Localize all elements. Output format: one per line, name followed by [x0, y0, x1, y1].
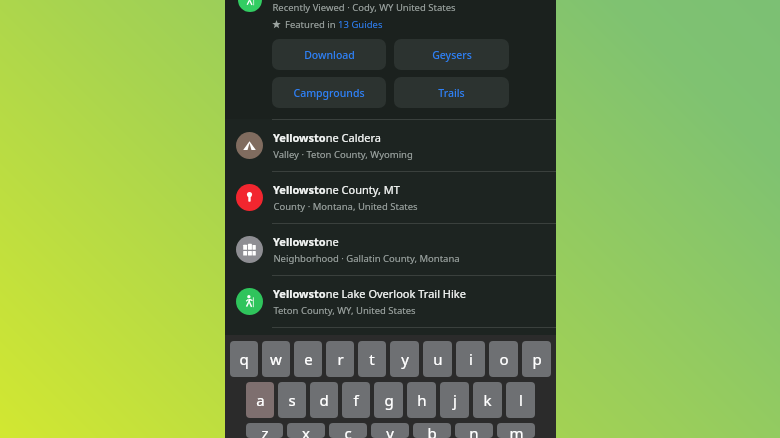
staticText: Valley · Teton County, Wyoming: [273, 148, 413, 161]
button[interactable]: k: [473, 382, 502, 418]
staticText: e: [304, 349, 313, 369]
button[interactable]: z: [246, 423, 283, 438]
button[interactable]: g: [374, 382, 403, 418]
staticText: Download: [304, 48, 355, 62]
staticText: d: [319, 390, 329, 410]
button[interactable]: Geysers: [394, 39, 509, 70]
staticText: s: [288, 390, 296, 410]
staticText: i: [469, 349, 473, 369]
staticText: l: [519, 390, 523, 410]
staticText: Yellowstone: [273, 234, 339, 249]
staticText: Campgrounds: [293, 86, 365, 100]
button[interactable]: r: [326, 341, 354, 377]
staticText: Yellowstone Caldera: [273, 130, 381, 145]
button[interactable]: u: [423, 341, 452, 377]
button[interactable]: h: [407, 382, 436, 418]
other: County: [236, 184, 263, 211]
staticText: v: [386, 423, 394, 438]
button[interactable]: x: [287, 423, 325, 438]
staticText: Teton County, WY, United States: [273, 304, 416, 317]
button[interactable]: Download: [272, 39, 386, 70]
button[interactable]: m: [497, 423, 535, 438]
button[interactable]: n: [455, 423, 493, 438]
staticText: Recently Viewed · Cody, WY United States: [272, 1, 456, 14]
staticText: r: [337, 349, 344, 369]
staticText: c: [344, 423, 352, 438]
staticText: k: [483, 390, 492, 410]
staticText: County · Montana, United States: [273, 200, 418, 213]
staticText: w: [270, 349, 282, 369]
staticText: h: [417, 390, 427, 410]
staticText: Neighborhood · Gallatin County, Montana: [273, 252, 460, 265]
other: Valley: [236, 132, 263, 159]
button[interactable]: w: [262, 341, 290, 377]
button[interactable]: b: [413, 423, 451, 438]
button[interactable]: p: [522, 341, 551, 377]
staticText: g: [384, 390, 394, 410]
button[interactable]: j: [440, 382, 469, 418]
other: Trail: [236, 288, 263, 315]
staticText: a: [256, 390, 265, 410]
staticText: Trails: [438, 86, 465, 100]
staticText: j: [453, 390, 457, 410]
button[interactable]: County: [225, 171, 556, 223]
button[interactable]: y: [390, 341, 419, 377]
button[interactable]: Valley: [225, 119, 556, 171]
button[interactable]: l: [506, 382, 535, 418]
button[interactable]: f: [342, 382, 370, 418]
other: Neighborhood: [236, 236, 263, 263]
staticText: Yellowstone Lake Overlook Trail Hike: [273, 286, 466, 301]
staticText: Yellowstone County, MT: [273, 182, 400, 197]
button[interactable]: Trails: [394, 77, 509, 108]
button[interactable]: o: [489, 341, 518, 377]
staticText: t: [369, 349, 375, 369]
staticText: u: [433, 349, 443, 369]
button[interactable]: Neighborhood: [225, 223, 556, 275]
button[interactable]: e: [294, 341, 322, 377]
button[interactable]: v: [371, 423, 409, 438]
button[interactable]: Campgrounds: [272, 77, 386, 108]
staticText: Geysers: [432, 48, 472, 62]
staticText: p: [532, 349, 542, 369]
button[interactable]: a: [246, 382, 274, 418]
staticText: x: [302, 423, 310, 438]
button[interactable]: q: [230, 341, 258, 377]
staticText: b: [427, 423, 437, 438]
button[interactable]: c: [329, 423, 367, 438]
staticText: o: [499, 349, 509, 369]
staticText: Featured in 13 Guides: [285, 18, 383, 31]
button[interactable]: i: [456, 341, 485, 377]
staticText: q: [239, 349, 249, 369]
button[interactable]: Trail: [225, 275, 556, 327]
staticText: y: [401, 349, 409, 369]
staticText: f: [353, 390, 359, 410]
button[interactable]: t: [358, 341, 386, 377]
button[interactable]: s: [278, 382, 306, 418]
staticText: n: [469, 423, 479, 438]
button[interactable]: d: [310, 382, 338, 418]
staticText: z: [261, 423, 269, 438]
staticText: m: [509, 423, 524, 438]
